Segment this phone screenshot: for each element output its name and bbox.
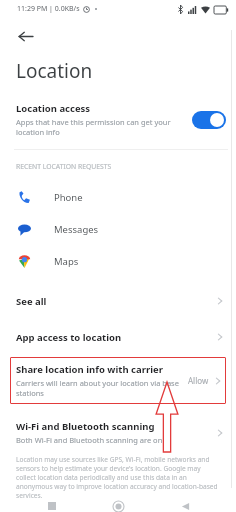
- staticText: Location access: [16, 102, 91, 115]
- staticText: Apps that have this permission can get y…: [16, 117, 184, 137]
- staticText: Maps: [54, 255, 79, 268]
- button[interactable]: Home: [103, 500, 133, 512]
- button[interactable]: See all: [0, 283, 236, 319]
- staticText: 11:29 PM | 0.0KB/s: [17, 4, 80, 14]
- staticText: Allow: [188, 375, 209, 386]
- button[interactable]: Back: [170, 500, 200, 512]
- staticText: Carriers will learn about your location …: [16, 378, 184, 398]
- button[interactable]: Phone: [0, 181, 236, 213]
- button[interactable]: Wi-Fi and Bluetooth scanning: [0, 420, 236, 445]
- staticText: Location may use sources like GPS, Wi-Fi…: [16, 455, 220, 500]
- staticText: Both Wi-Fi and Bluetooth scanning are on: [16, 435, 163, 445]
- button[interactable]: Maps: [0, 245, 236, 277]
- staticText: App access to location: [16, 331, 216, 344]
- staticText: Share location info with carrier: [16, 363, 163, 376]
- button[interactable]: Location access: [0, 94, 236, 147]
- staticText: Wi-Fi and Bluetooth scanning: [16, 420, 155, 433]
- staticText: See all: [16, 295, 216, 308]
- staticText: Location: [16, 58, 93, 84]
- staticText: RECENT LOCATION REQUESTS: [16, 162, 112, 171]
- button[interactable]: App access to location: [0, 319, 236, 355]
- staticText: Phone: [54, 191, 83, 204]
- staticText: Messages: [54, 223, 99, 236]
- button[interactable]: Messages: [0, 213, 236, 245]
- button[interactable]: Back: [11, 22, 39, 50]
- button[interactable]: Share location info with carrier: [10, 357, 226, 404]
- button[interactable]: Recents: [37, 500, 67, 512]
